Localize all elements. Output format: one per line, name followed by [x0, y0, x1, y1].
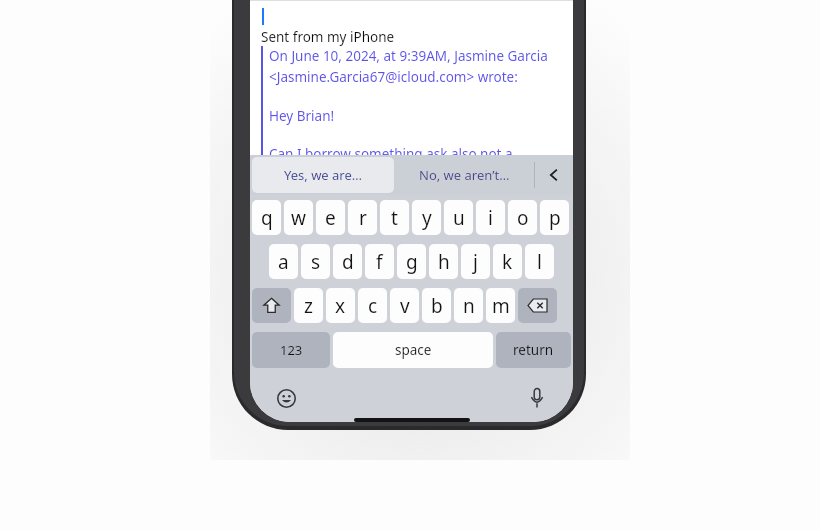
button[interactable]: r [348, 200, 377, 235]
staticText: r [359, 205, 367, 231]
button[interactable]: e [316, 200, 345, 235]
button[interactable]: y [412, 200, 441, 235]
staticText: f [376, 249, 383, 275]
button[interactable]: k [493, 244, 522, 279]
staticText: y [422, 205, 432, 231]
button[interactable]: q [252, 200, 281, 235]
staticText: <Jasmine.Garcia67@icloud.com> wrote: [269, 68, 518, 86]
staticText: k [502, 249, 513, 275]
button[interactable]: a [269, 244, 298, 279]
staticText: w [291, 205, 306, 231]
button[interactable]: 123 [252, 332, 330, 368]
staticText: g [406, 249, 418, 275]
button[interactable]: return [496, 332, 571, 368]
staticText: e [325, 205, 336, 231]
staticText: s [311, 249, 321, 275]
button[interactable]: u [444, 200, 473, 235]
button[interactable]: t [380, 200, 409, 235]
staticText: Hey Brian! [269, 107, 335, 125]
button[interactable]: Shift [252, 288, 291, 323]
staticText: o [517, 205, 529, 231]
staticText: No, we aren’t… [419, 166, 510, 184]
staticText: u [453, 205, 465, 231]
staticText: 123 [280, 341, 303, 359]
button[interactable]: v [390, 288, 419, 323]
button[interactable]: c [358, 288, 387, 323]
staticText: d [342, 249, 354, 275]
button[interactable]: Delete [518, 288, 557, 323]
staticText: h [438, 249, 450, 275]
button[interactable]: space [333, 332, 493, 368]
button[interactable]: l [525, 244, 554, 279]
button[interactable]: j [461, 244, 490, 279]
button[interactable]: g [397, 244, 426, 279]
staticText: i [488, 205, 493, 231]
staticText: p [549, 205, 561, 231]
staticText: Yes, we are… [284, 166, 363, 184]
staticText: Sent from my iPhone [261, 28, 395, 46]
staticText: q [261, 205, 273, 231]
staticText: b [431, 293, 443, 319]
staticText: c [368, 293, 378, 319]
staticText: return [513, 341, 554, 359]
button[interactable]: Emoji [272, 384, 300, 412]
button[interactable]: x [326, 288, 355, 323]
button[interactable]: n [454, 288, 483, 323]
button[interactable]: Dictate [523, 384, 551, 412]
staticText: j [473, 249, 478, 275]
button[interactable]: s [301, 244, 330, 279]
button[interactable]: No, we aren’t… [394, 157, 534, 193]
staticText: l [537, 249, 542, 275]
button[interactable]: h [429, 244, 458, 279]
staticText: a [278, 249, 289, 275]
staticText: Can I borrow something ask also not a [269, 145, 513, 163]
button[interactable]: p [540, 200, 569, 235]
button[interactable]: Yes, we are… [252, 157, 394, 193]
staticText: n [463, 293, 475, 319]
button[interactable]: m [486, 288, 515, 323]
staticText: t [391, 205, 398, 231]
button[interactable]: o [508, 200, 537, 235]
button[interactable]: w [284, 200, 313, 235]
button[interactable]: d [333, 244, 362, 279]
staticText: x [335, 293, 346, 319]
staticText: v [400, 293, 410, 319]
button[interactable]: z [294, 288, 323, 323]
button[interactable]: Collapse predictions [535, 157, 573, 193]
staticText: On June 10, 2024, at 9:39AM, Jasmine Gar… [269, 47, 548, 65]
button[interactable]: b [422, 288, 451, 323]
button[interactable]: i [476, 200, 505, 235]
staticText: z [304, 293, 313, 319]
button[interactable]: f [365, 244, 394, 279]
staticText: space [395, 341, 432, 359]
staticText: m [492, 293, 510, 319]
